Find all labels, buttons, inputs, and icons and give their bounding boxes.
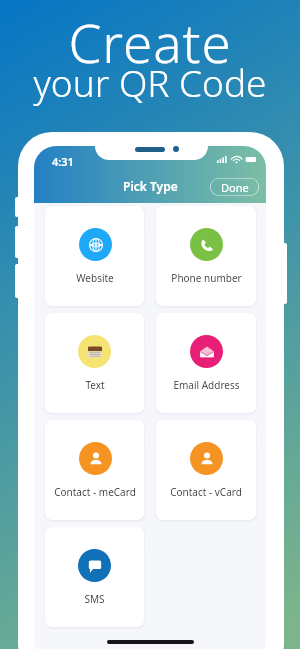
- button[interactable]: Website: [45, 206, 144, 306]
- staticText: Contact - vCard: [170, 485, 242, 499]
- button[interactable]: SMS: [45, 527, 144, 627]
- staticText: your QR Code: [33, 57, 267, 107]
- staticText: Email Address: [173, 378, 240, 392]
- staticText: 4:31: [52, 154, 74, 169]
- staticText: Create: [68, 6, 232, 78]
- staticText: Pick Type: [123, 178, 178, 194]
- button[interactable]: Text: [45, 313, 144, 413]
- staticText: Phone number: [171, 271, 242, 285]
- button[interactable]: Contact - vCard: [156, 420, 256, 520]
- staticText: SMS: [84, 592, 105, 606]
- button[interactable]: Done: [210, 178, 259, 196]
- button[interactable]: Contact - meCard: [45, 420, 144, 520]
- staticText: Contact - meCard: [54, 485, 136, 499]
- staticText: Done: [221, 180, 249, 195]
- staticText: Website: [76, 271, 114, 285]
- button[interactable]: Phone number: [156, 206, 256, 306]
- button[interactable]: Email Address: [156, 313, 256, 413]
- staticText: Text: [85, 378, 105, 392]
